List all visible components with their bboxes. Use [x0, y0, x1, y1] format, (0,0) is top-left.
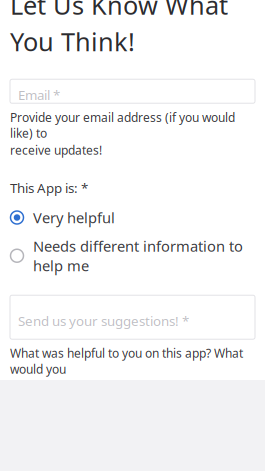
staticText: Email * [18, 86, 60, 104]
staticText: receive updates! [10, 142, 102, 158]
button[interactable]: Menu [4, 14, 38, 40]
staticText: to [127, 22, 137, 35]
staticText: Let Us Know What [10, 0, 228, 22]
button[interactable]: Very helpful [10, 206, 255, 229]
staticText: What was helpful to you on this app? Wha… [10, 345, 243, 377]
staticText: Very helpful [33, 208, 115, 227]
button[interactable]: Kind to You [90, 14, 174, 43]
staticText: 1:25 PM [124, 0, 169, 15]
staticText: Provide your email address (if you would… [10, 109, 235, 141]
staticText: You Think! [10, 25, 135, 58]
staticText: like more information on? [10, 378, 152, 394]
staticText: Needs different information to help me [33, 236, 243, 275]
staticText: KIND [118, 8, 146, 22]
staticText: YOU [121, 35, 143, 49]
staticText: Send us your suggestions! * [18, 312, 189, 330]
staticText: This App is: * [10, 179, 88, 197]
staticText: Carrier [6, 0, 46, 15]
button[interactable]: Needs different information to help me [10, 234, 255, 277]
